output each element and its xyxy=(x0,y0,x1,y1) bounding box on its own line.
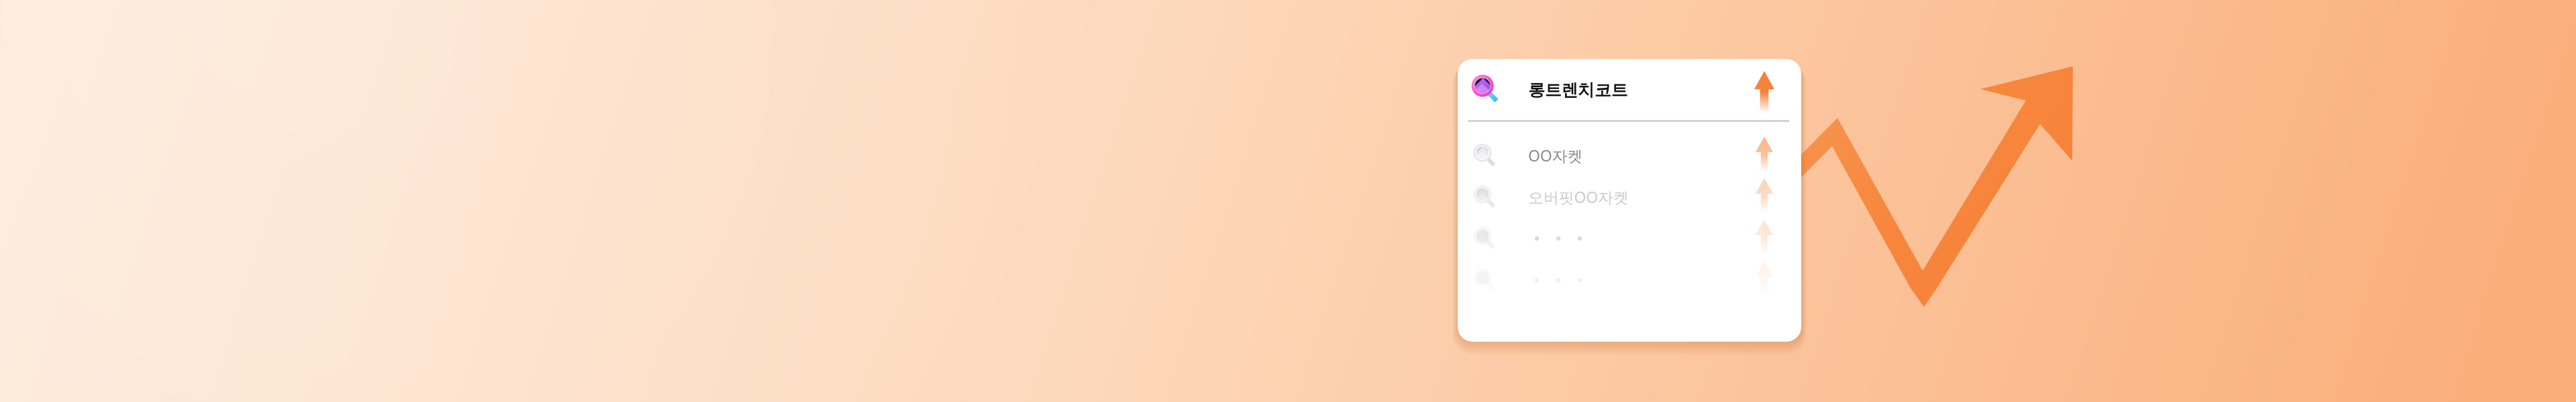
staticText: 롱트렌치코트 xyxy=(1528,80,1628,100)
button[interactable]: 오버핏OO자켓 xyxy=(1458,176,1801,217)
staticText: OO자켓 xyxy=(1528,145,1583,165)
button[interactable]: More trending searches xyxy=(1458,217,1801,259)
button[interactable]: OO자켓 xyxy=(1458,134,1801,176)
staticText: 오버핏OO자켓 xyxy=(1528,186,1629,207)
button[interactable]: 롱트렌치코트 xyxy=(1458,59,1801,121)
